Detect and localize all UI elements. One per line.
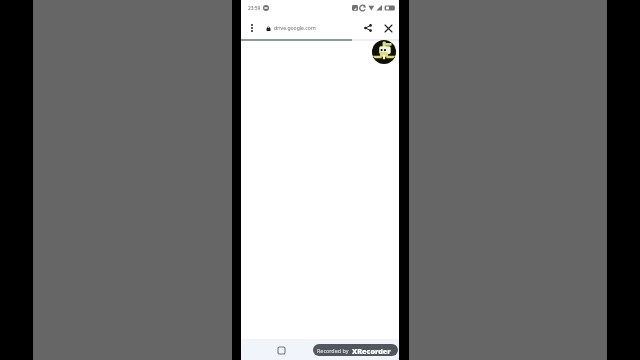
staticText: XRecorder xyxy=(352,346,391,354)
button[interactable]: drive.google.com xyxy=(262,18,378,38)
staticText: 23:59 xyxy=(248,5,261,12)
button[interactable]: Close xyxy=(380,20,396,36)
button[interactable]: Share xyxy=(360,20,376,36)
staticText: Recorded by xyxy=(317,347,349,354)
button[interactable]: More options xyxy=(244,20,260,36)
button[interactable]: Recents xyxy=(274,343,288,357)
button[interactable]: Profile xyxy=(372,40,396,64)
staticText: drive.google.com xyxy=(274,25,316,32)
